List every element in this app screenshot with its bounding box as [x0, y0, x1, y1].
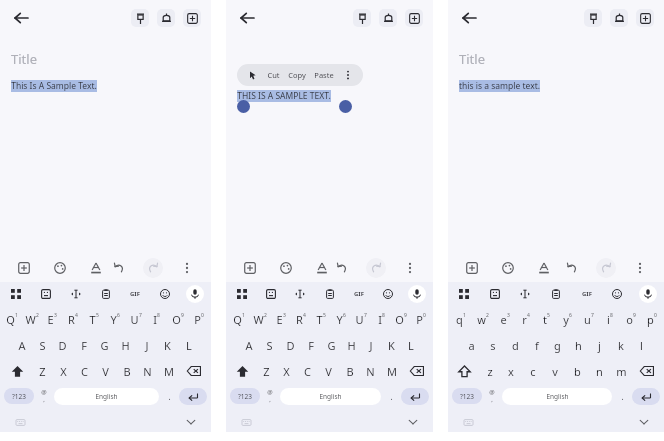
- button[interactable]: F: [301, 332, 321, 358]
- button[interactable]: N: [137, 358, 158, 384]
- button[interactable]: d: [504, 332, 526, 358]
- button[interactable]: E: [270, 306, 291, 332]
- button[interactable]: Emoji: [608, 285, 626, 303]
- button[interactable]: More options: [400, 258, 419, 278]
- button[interactable]: Hide keyboard: [183, 414, 199, 430]
- button[interactable]: i: [599, 306, 620, 332]
- button[interactable]: L: [178, 332, 199, 358]
- button[interactable]: I: [371, 306, 391, 332]
- button[interactable]: W: [22, 306, 42, 332]
- button[interactable]: Stickers: [486, 285, 504, 303]
- button[interactable]: V: [318, 358, 339, 384]
- button[interactable]: Stickers: [262, 285, 280, 303]
- button[interactable]: Switch keyboard: [460, 414, 476, 430]
- button[interactable]: E: [42, 306, 62, 332]
- button[interactable]: v: [544, 358, 566, 384]
- button[interactable]: .: [381, 384, 401, 408]
- button[interactable]: Voice input: [186, 285, 204, 303]
- button[interactable]: Archive: [636, 9, 654, 27]
- button[interactable]: More options: [341, 68, 355, 82]
- button[interactable]: x: [500, 358, 522, 384]
- button[interactable]: .: [159, 384, 179, 408]
- button[interactable]: Hide keyboard: [405, 414, 421, 430]
- button[interactable]: Y: [104, 306, 125, 332]
- button[interactable]: Colour: [498, 258, 518, 278]
- button[interactable]: j: [589, 332, 610, 358]
- button[interactable]: ?123: [452, 388, 482, 404]
- button[interactable]: K: [157, 332, 178, 358]
- button[interactable]: z: [479, 358, 500, 384]
- button[interactable]: Voice input: [639, 285, 657, 303]
- button[interactable]: GIF: [578, 285, 596, 303]
- button[interactable]: Emoji: [156, 285, 174, 303]
- button[interactable]: q: [450, 306, 472, 332]
- button[interactable]: G: [321, 332, 341, 358]
- button[interactable]: ?123: [230, 388, 260, 404]
- button[interactable]: J: [136, 332, 157, 358]
- button[interactable]: W: [249, 306, 270, 332]
- button[interactable]: H: [115, 332, 136, 358]
- button[interactable]: m: [610, 358, 632, 384]
- button[interactable]: U: [351, 306, 371, 332]
- button[interactable]: U: [125, 306, 146, 332]
- button[interactable]: A: [12, 332, 32, 358]
- button[interactable]: M: [158, 358, 179, 384]
- button[interactable]: P: [188, 306, 209, 332]
- button[interactable]: Pin: [584, 9, 602, 27]
- button[interactable]: English: [54, 388, 159, 405]
- button[interactable]: k: [610, 332, 631, 358]
- button[interactable]: T: [83, 306, 104, 332]
- button[interactable]: Backspace: [632, 358, 662, 384]
- button[interactable]: G: [94, 332, 115, 358]
- button[interactable]: A: [238, 332, 259, 358]
- button[interactable]: Shift: [228, 358, 256, 384]
- button[interactable]: Pin: [131, 9, 149, 27]
- button[interactable]: ?123: [4, 388, 34, 404]
- button[interactable]: O: [167, 306, 188, 332]
- button[interactable]: y: [557, 306, 578, 332]
- button[interactable]: Back: [10, 7, 32, 29]
- button[interactable]: Insert: [14, 258, 34, 278]
- button[interactable]: e: [494, 306, 515, 332]
- button[interactable]: o: [620, 306, 641, 332]
- button[interactable]: S: [32, 332, 52, 358]
- button[interactable]: V: [95, 358, 116, 384]
- button[interactable]: Shift: [450, 358, 479, 384]
- button[interactable]: Text format: [86, 258, 106, 278]
- button[interactable]: English: [502, 388, 612, 405]
- button[interactable]: Undo: [562, 258, 582, 278]
- button[interactable]: O: [391, 306, 411, 332]
- button[interactable]: S: [259, 332, 280, 358]
- button[interactable]: Reminder: [157, 9, 175, 27]
- button[interactable]: Insert: [462, 258, 482, 278]
- button[interactable]: Cut: [267, 70, 280, 80]
- button[interactable]: H: [341, 332, 361, 358]
- button[interactable]: Undo: [109, 258, 129, 278]
- button[interactable]: Text editing: [516, 285, 534, 303]
- button[interactable]: GIF: [126, 285, 144, 303]
- button[interactable]: C: [74, 358, 95, 384]
- button[interactable]: Archive: [183, 9, 201, 27]
- button[interactable]: n: [588, 358, 610, 384]
- button[interactable]: Select: [245, 68, 259, 82]
- button[interactable]: Colour: [276, 258, 296, 278]
- button[interactable]: Q: [228, 306, 249, 332]
- button[interactable]: .: [612, 384, 632, 408]
- button[interactable]: Apps: [455, 285, 473, 303]
- button[interactable]: u: [578, 306, 599, 332]
- button[interactable]: Z: [32, 358, 53, 384]
- button[interactable]: Q: [2, 306, 22, 332]
- button[interactable]: Apps: [233, 285, 251, 303]
- button[interactable]: @: [260, 384, 280, 408]
- button[interactable]: t: [536, 306, 557, 332]
- button[interactable]: N: [360, 358, 381, 384]
- button[interactable]: Apps: [7, 285, 25, 303]
- button[interactable]: P: [411, 306, 431, 332]
- button[interactable]: Enter: [401, 388, 429, 405]
- button[interactable]: C: [297, 358, 318, 384]
- button[interactable]: Backspace: [402, 358, 431, 384]
- button[interactable]: Enter: [179, 388, 207, 405]
- button[interactable]: M: [381, 358, 402, 384]
- button[interactable]: c: [522, 358, 544, 384]
- button[interactable]: J: [361, 332, 381, 358]
